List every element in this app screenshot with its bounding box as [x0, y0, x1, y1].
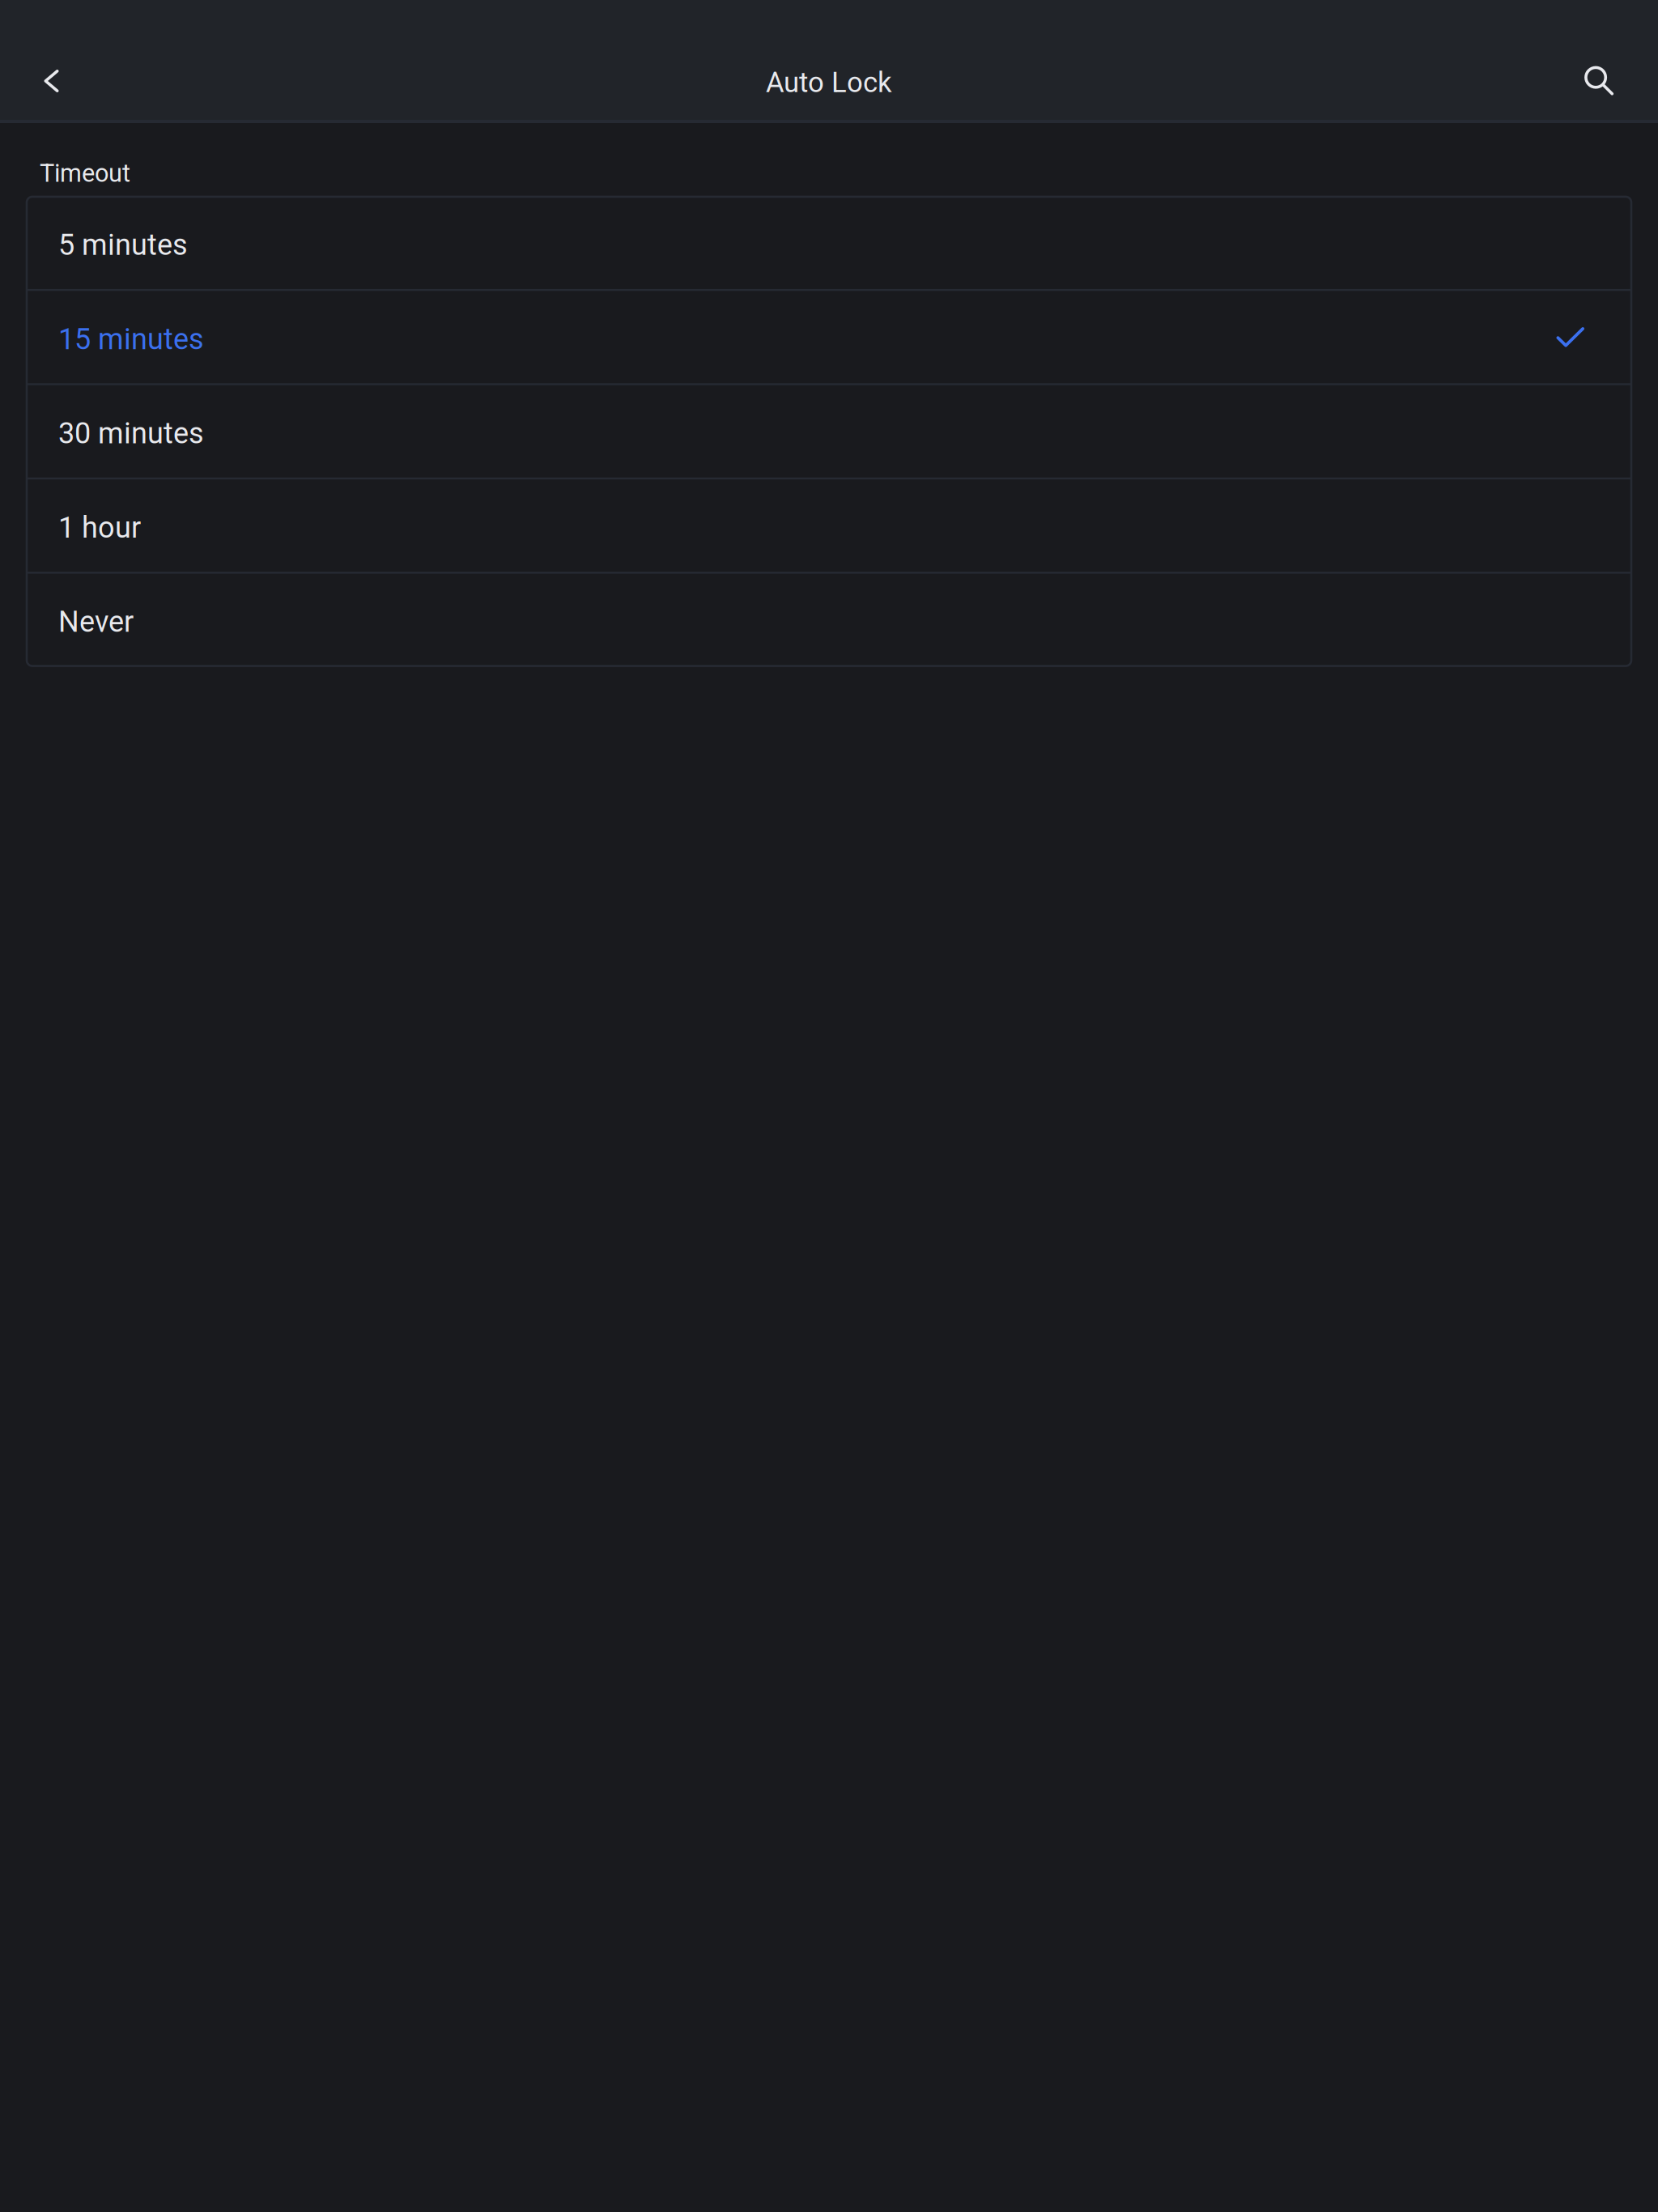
button[interactable]: Search — [1541, 45, 1658, 117]
staticText: Auto Lock — [766, 66, 892, 99]
staticText: 5 minutes — [58, 228, 188, 262]
button[interactable]: Back — [0, 45, 103, 117]
staticText: Timeout — [40, 159, 130, 188]
button[interactable]: 30 minutes — [27, 385, 1631, 477]
staticText: 30 minutes — [58, 416, 204, 450]
button[interactable]: 5 minutes — [27, 197, 1631, 289]
button[interactable]: Never — [27, 574, 1631, 666]
button[interactable]: 15 minutes — [27, 291, 1631, 383]
button[interactable]: 1 hour — [27, 479, 1631, 572]
staticText: 1 hour — [58, 510, 141, 545]
staticText: Never — [58, 605, 134, 639]
staticText: 15 minutes — [58, 322, 204, 356]
